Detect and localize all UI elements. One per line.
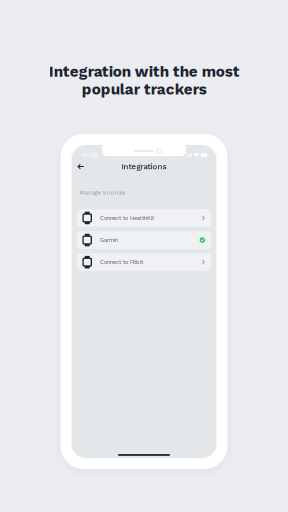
staticText: Manage Sources bbox=[79, 189, 125, 196]
staticText: Connect to HealthKit bbox=[100, 215, 154, 221]
button[interactable]: Back bbox=[73, 160, 88, 173]
staticText: Integration with the most popular tracke… bbox=[48, 62, 239, 98]
staticText: Garmin bbox=[100, 237, 118, 243]
button[interactable]: Connect to Fitbit bbox=[77, 253, 211, 271]
staticText: Connect to Fitbit bbox=[100, 259, 143, 265]
button[interactable]: Connect to HealthKit bbox=[77, 209, 211, 227]
staticText: Integrations bbox=[121, 162, 166, 171]
button[interactable]: Garmin bbox=[77, 231, 211, 249]
staticText: 11:26 bbox=[82, 151, 98, 159]
